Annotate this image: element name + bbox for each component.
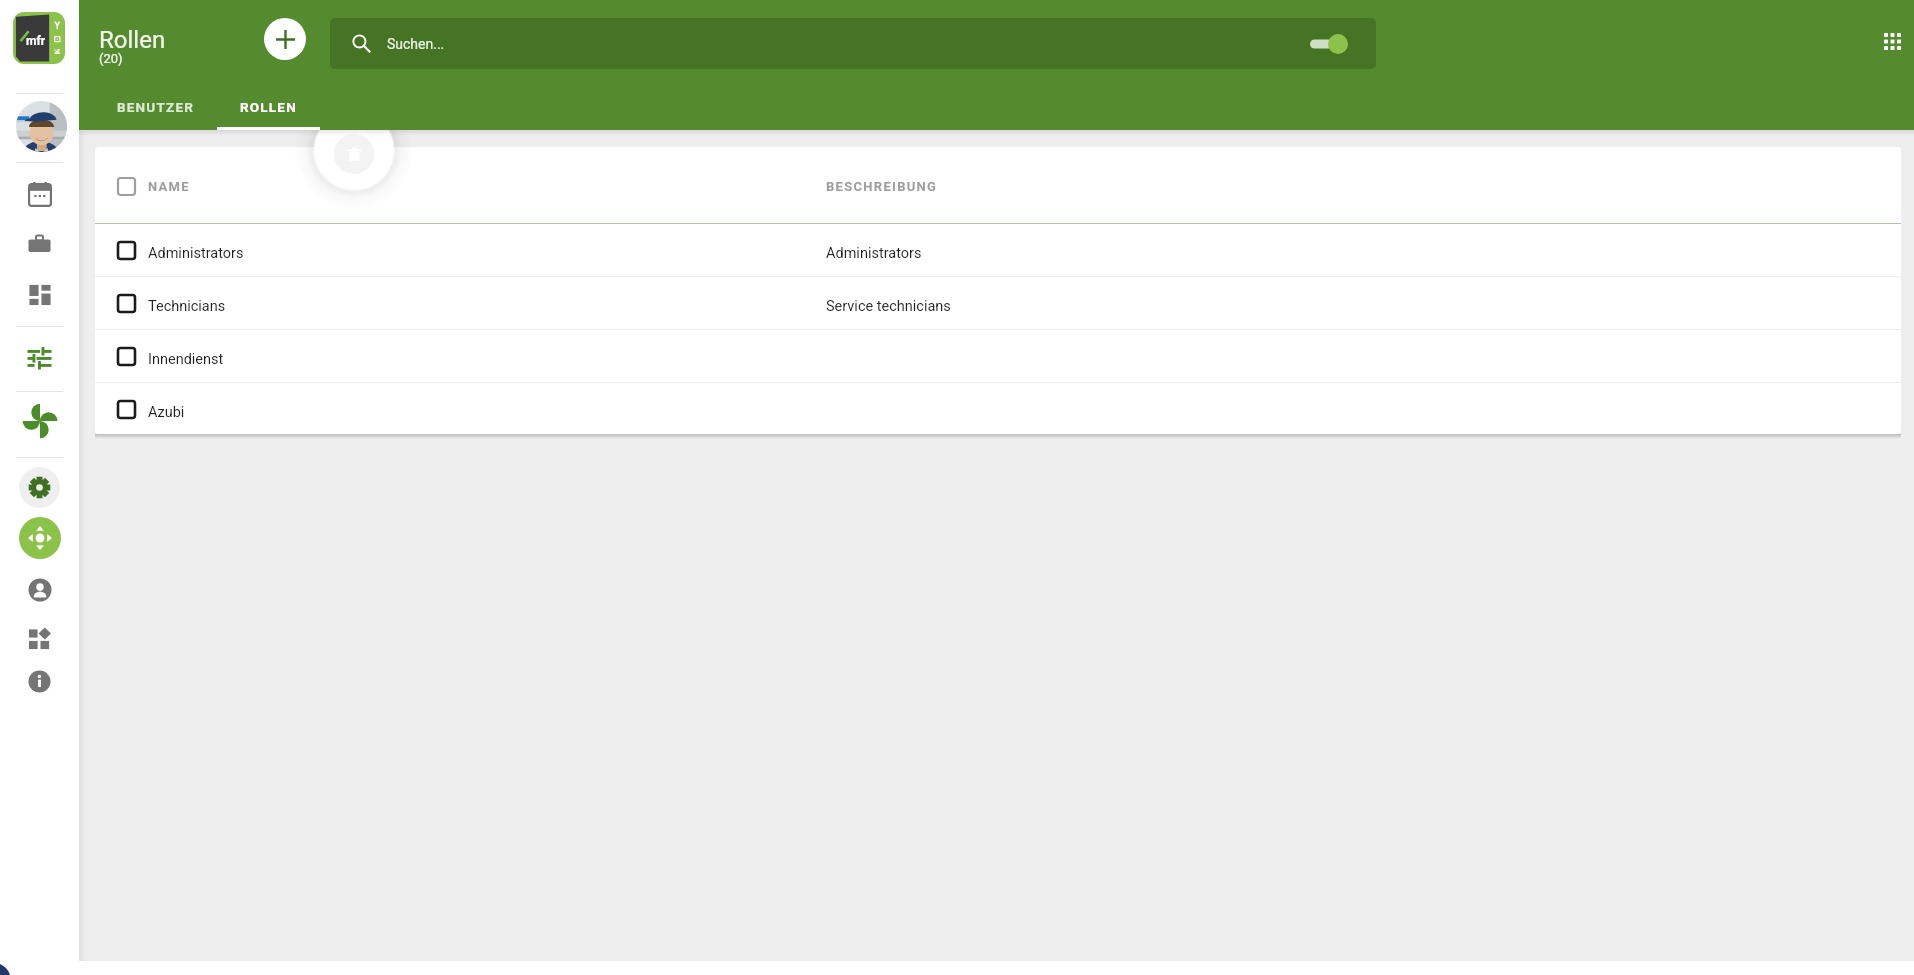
button[interactable]: Delete selected xyxy=(314,110,394,190)
button[interactable]: Settings xyxy=(19,467,60,508)
staticText: Administrators xyxy=(148,245,244,262)
staticText: NAME xyxy=(148,179,190,194)
staticText: Innendienst xyxy=(148,351,224,368)
button[interactable]: ROLLEN xyxy=(217,82,320,130)
button[interactable]: BENUTZER xyxy=(104,82,207,130)
staticText: (20) xyxy=(99,51,123,66)
button[interactable]: Calendar xyxy=(19,174,60,215)
button[interactable]: Modules xyxy=(19,618,60,659)
button[interactable]: Administrators xyxy=(95,224,1901,276)
button[interactable]: Technicians xyxy=(95,277,1901,329)
button[interactable]: Toggle search option xyxy=(1300,21,1358,67)
staticText: Administrators xyxy=(826,245,922,262)
button[interactable]: Add role xyxy=(264,18,306,60)
staticText: Service technicians xyxy=(826,298,951,315)
button[interactable]: Select all xyxy=(108,168,144,204)
staticText: Azubi xyxy=(148,404,185,421)
button[interactable]: Innendienst xyxy=(95,330,1901,382)
button[interactable]: Info xyxy=(19,661,60,702)
button[interactable]: Suchen... xyxy=(330,18,1376,69)
button[interactable]: mfr home xyxy=(13,12,65,64)
staticText: ROLLEN xyxy=(240,99,297,115)
button[interactable]: Ventilation xyxy=(19,400,60,441)
staticText: BESCHREIBUNG xyxy=(826,179,938,194)
staticText: Rollen xyxy=(99,26,166,54)
button[interactable]: Filter xyxy=(19,338,60,379)
staticText: Suchen... xyxy=(387,36,445,52)
button[interactable]: Azubi xyxy=(95,383,1901,434)
staticText: mfr xyxy=(26,34,46,48)
staticText: Technicians xyxy=(148,298,226,315)
button[interactable]: Move xyxy=(19,517,61,559)
button[interactable]: Apps xyxy=(1872,21,1912,61)
button[interactable]: Dashboard xyxy=(19,274,60,315)
staticText: BENUTZER xyxy=(117,99,195,115)
button[interactable]: Account xyxy=(19,569,60,610)
button[interactable]: Profile xyxy=(16,101,67,152)
button[interactable]: Jobs xyxy=(19,224,60,265)
